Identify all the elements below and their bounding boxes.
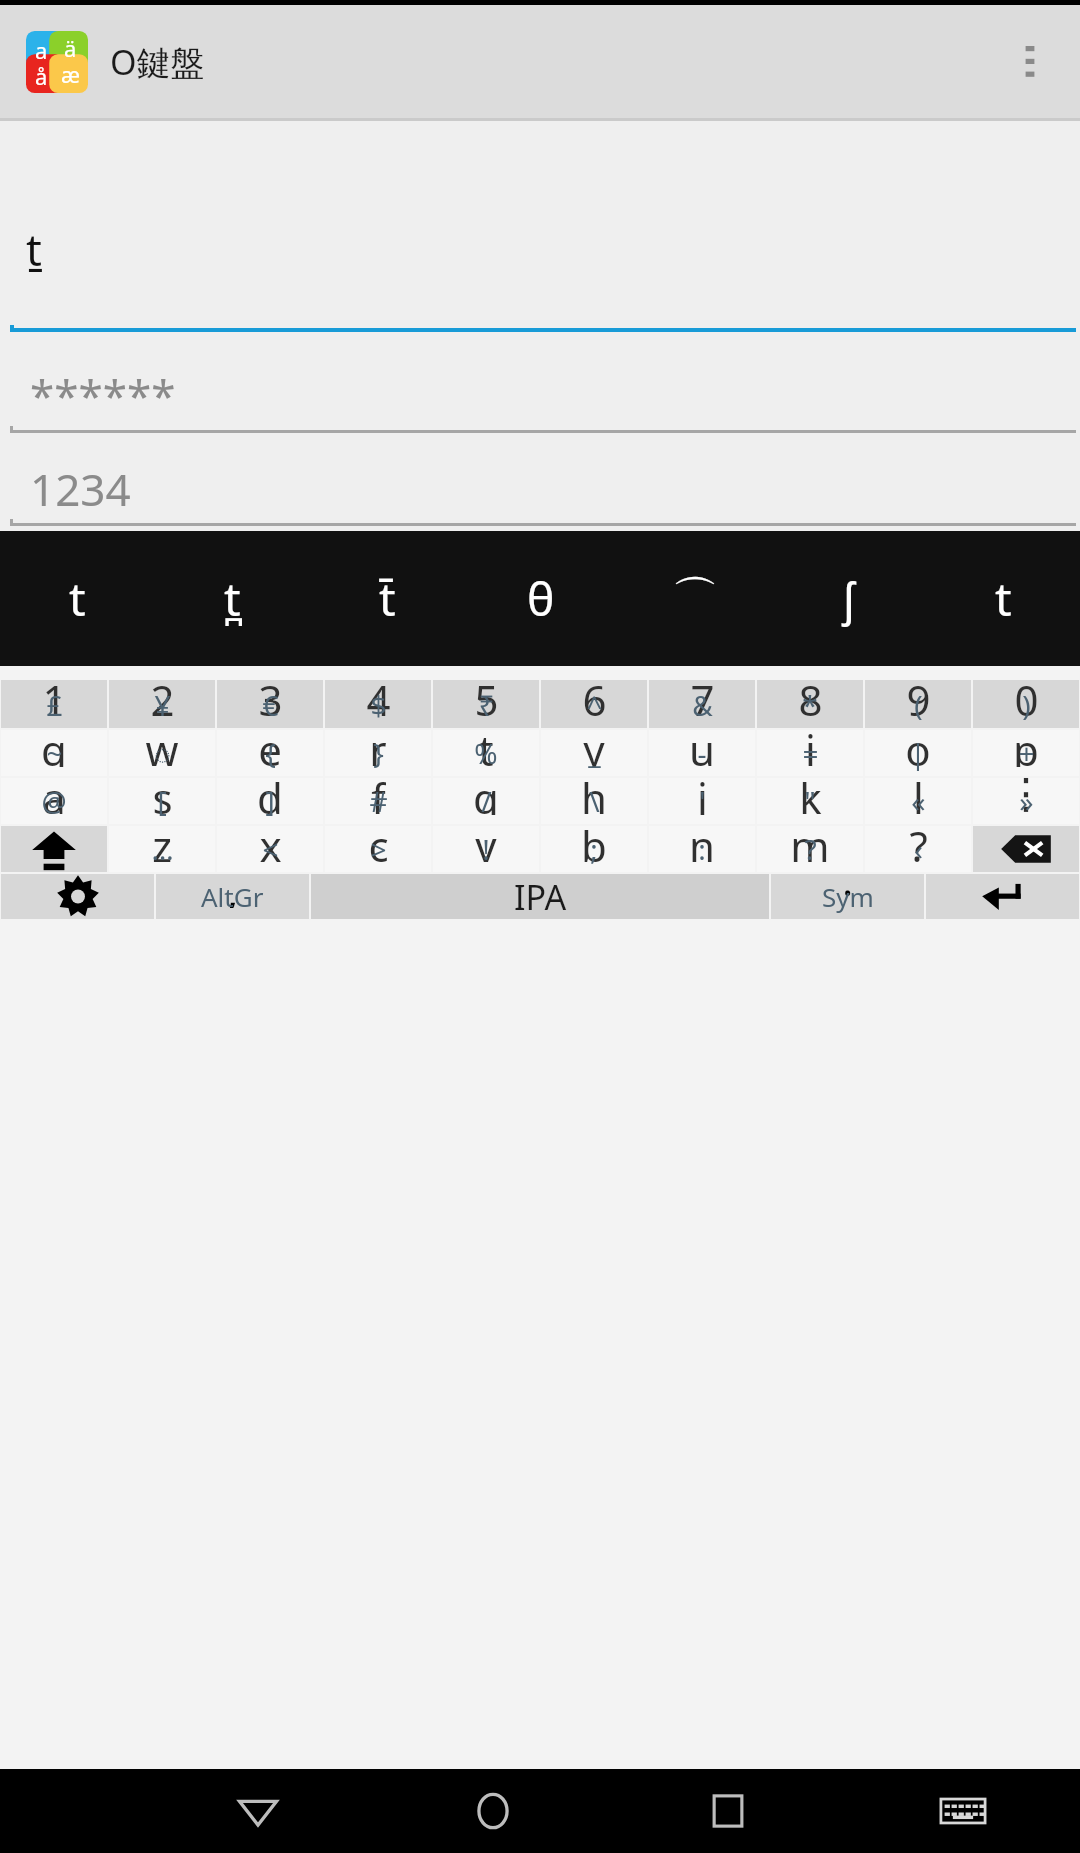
staticText: * <box>802 686 818 724</box>
staticText: { <box>265 734 276 772</box>
button[interactable]: More options <box>1000 32 1060 92</box>
staticText: a <box>42 769 66 815</box>
staticText: ◌ <box>154 734 171 772</box>
staticText: n <box>689 817 715 863</box>
button[interactable]: , <box>156 874 309 919</box>
button[interactable]: ⋮ <box>973 778 1079 824</box>
button[interactable]: f <box>325 778 431 824</box>
staticText: · <box>842 863 854 908</box>
button[interactable]: i <box>757 730 863 776</box>
button[interactable]: 4 <box>325 680 431 728</box>
button[interactable]: t̄ <box>310 531 464 666</box>
button[interactable]: b <box>541 826 647 872</box>
button[interactable]: Home <box>375 1769 610 1853</box>
button[interactable]: v <box>433 826 539 872</box>
button[interactable]: 8 <box>757 680 863 728</box>
button[interactable]: 1234 <box>0 459 1080 519</box>
button[interactable]: q <box>1 730 107 776</box>
button[interactable]: l <box>865 778 971 824</box>
staticText: c <box>368 817 389 863</box>
button[interactable]: 1 <box>1 680 107 728</box>
button[interactable]: 5 <box>433 680 539 728</box>
button[interactable]: a <box>1 778 107 824</box>
staticText: / <box>481 782 492 820</box>
button[interactable]: n <box>649 826 755 872</box>
staticText: ʃ <box>843 567 855 630</box>
staticText: t <box>478 721 494 767</box>
button[interactable]: ⌒ <box>618 531 772 666</box>
button[interactable]: 9 <box>865 680 971 728</box>
button[interactable]: y <box>541 730 647 776</box>
button[interactable]: ? <box>865 826 971 872</box>
staticText: 9 <box>906 671 931 719</box>
staticText: d <box>257 769 283 815</box>
button[interactable]: h <box>541 778 647 824</box>
staticText: ? <box>804 830 817 868</box>
staticText: g <box>473 769 499 815</box>
staticText: < <box>262 830 279 868</box>
staticText: " <box>804 782 816 820</box>
button[interactable]: 0 <box>973 680 1079 728</box>
button[interactable]: w <box>109 730 215 776</box>
button[interactable]: t̪ <box>155 531 310 666</box>
button[interactable]: 2 <box>109 680 215 728</box>
button[interactable]: ****** <box>0 364 1080 426</box>
button[interactable]: ṯ <box>0 173 1080 325</box>
button[interactable]: t <box>433 730 539 776</box>
button[interactable]: p <box>973 730 1079 776</box>
button[interactable]: d <box>217 778 323 824</box>
staticText: « <box>911 782 926 820</box>
staticText: x <box>259 817 282 863</box>
staticText: o <box>905 721 931 767</box>
staticText: 2 <box>150 671 175 719</box>
staticText: t <box>995 567 1012 630</box>
button[interactable]: Backspace <box>973 826 1079 872</box>
staticText: 0 <box>1014 671 1039 719</box>
staticText: θ <box>527 567 555 630</box>
button[interactable]: g <box>433 778 539 824</box>
button[interactable]: IPA <box>311 874 769 919</box>
staticText: m <box>790 817 830 863</box>
staticText: k <box>799 769 822 815</box>
staticText: Sym <box>822 879 874 914</box>
button[interactable]: s <box>109 778 215 824</box>
staticText: æ <box>61 59 81 89</box>
button[interactable]: 3 <box>217 680 323 728</box>
staticText: b <box>581 817 607 863</box>
button[interactable]: m <box>757 826 863 872</box>
button[interactable]: Recents <box>610 1769 845 1853</box>
button[interactable]: 7 <box>649 680 755 728</box>
button[interactable]: e <box>217 730 323 776</box>
button[interactable]: Shift <box>1 826 107 872</box>
staticText: _ <box>588 734 601 772</box>
button[interactable]: u <box>649 730 755 776</box>
staticText: ] <box>265 782 275 820</box>
staticText: » <box>1019 782 1034 820</box>
button[interactable]: θ <box>464 531 618 666</box>
button[interactable]: o <box>865 730 971 776</box>
staticText: ( <box>914 686 923 724</box>
button[interactable]: 6 <box>541 680 647 728</box>
button[interactable]: Settings <box>1 874 154 919</box>
button[interactable]: t <box>0 531 155 666</box>
button[interactable]: Switch keyboard <box>845 1769 1080 1853</box>
staticText: ä <box>64 33 77 63</box>
staticText: ‹ <box>914 830 923 868</box>
staticText: $ <box>370 686 387 724</box>
button[interactable]: k <box>757 778 863 824</box>
staticText: ' <box>699 782 706 820</box>
button[interactable]: j <box>649 778 755 824</box>
staticText: t̪ <box>224 567 241 630</box>
button[interactable]: x <box>217 826 323 872</box>
staticText: \ <box>589 782 600 820</box>
button[interactable]: ʃ <box>772 531 926 666</box>
staticText: & <box>692 686 713 724</box>
button[interactable]: t <box>926 531 1080 666</box>
button[interactable]: z <box>109 826 215 872</box>
button[interactable]: · <box>771 874 924 919</box>
button[interactable]: Back <box>140 1769 375 1853</box>
button[interactable]: Enter <box>926 874 1079 919</box>
staticText: 4 <box>366 671 391 719</box>
button[interactable]: r <box>325 730 431 776</box>
button[interactable]: c <box>325 826 431 872</box>
